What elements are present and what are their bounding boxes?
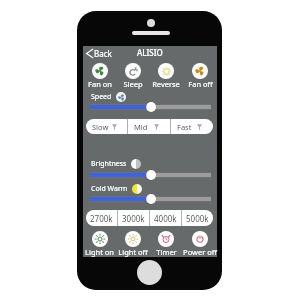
button[interactable]: Slow bbox=[86, 119, 127, 134]
staticText: Power off bbox=[183, 247, 217, 257]
staticText: Timer bbox=[156, 247, 177, 257]
staticText: Fan off bbox=[188, 79, 213, 89]
staticText: Speed bbox=[91, 92, 112, 102]
button[interactable]: 5000k bbox=[182, 210, 213, 226]
staticText: Slow bbox=[92, 122, 109, 132]
staticText: ALISIO bbox=[137, 47, 163, 58]
button[interactable]: Fast bbox=[171, 119, 213, 134]
staticText: Sleep bbox=[123, 79, 143, 89]
staticText: 5000k bbox=[186, 213, 209, 224]
button[interactable]: Power off bbox=[183, 231, 217, 257]
button[interactable]: Timer bbox=[149, 231, 183, 257]
staticText: Light off bbox=[118, 247, 148, 257]
staticText: 4000k bbox=[154, 213, 177, 224]
button[interactable]: Back bbox=[86, 48, 112, 59]
button[interactable]: Fan off bbox=[183, 63, 217, 89]
staticText: Fan on bbox=[88, 79, 112, 89]
staticText: 2700k bbox=[90, 213, 113, 224]
staticText: Back bbox=[94, 48, 112, 59]
staticText: Fast bbox=[177, 122, 192, 132]
button[interactable]: 3000k bbox=[118, 210, 149, 226]
staticText: Light on bbox=[85, 247, 114, 257]
button[interactable]: Light on bbox=[83, 231, 116, 257]
button[interactable]: 4000k bbox=[150, 210, 181, 226]
staticText: Cold Warm bbox=[91, 184, 128, 194]
staticText: Reverse bbox=[152, 79, 180, 89]
button[interactable]: Light off bbox=[116, 231, 149, 257]
button[interactable]: Sleep bbox=[116, 63, 149, 89]
button[interactable]: Fan on bbox=[83, 63, 116, 89]
button[interactable]: Reverse bbox=[149, 63, 183, 89]
staticText: 3000k bbox=[122, 213, 145, 224]
staticText: Brightness bbox=[91, 159, 127, 169]
button[interactable]: Mid bbox=[128, 119, 170, 134]
button[interactable]: 2700k bbox=[86, 210, 117, 226]
staticText: Mid bbox=[134, 122, 148, 132]
